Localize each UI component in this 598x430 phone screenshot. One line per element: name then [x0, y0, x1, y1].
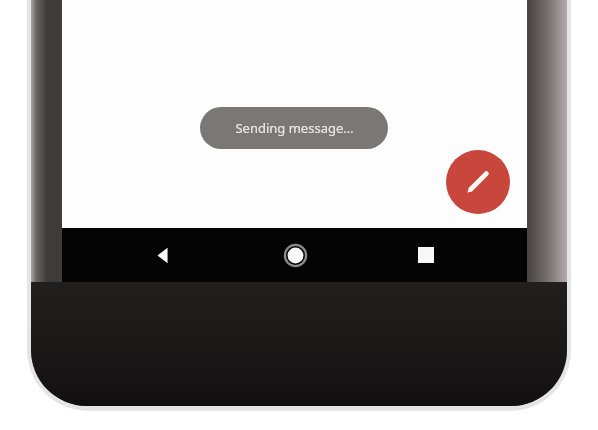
button[interactable]: Compose message [446, 150, 510, 214]
button[interactable]: Sending message… [200, 107, 388, 149]
button[interactable]: Recent apps [409, 238, 443, 272]
button[interactable]: Back [145, 238, 179, 272]
staticText: Sending message… [235, 119, 354, 137]
button[interactable]: Home [278, 238, 312, 272]
